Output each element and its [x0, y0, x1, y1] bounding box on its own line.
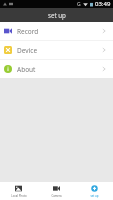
staticText: G: [77, 1, 81, 8]
staticText: Device: [17, 46, 38, 55]
staticText: set up: [48, 11, 66, 19]
button[interactable]: Local Photo: [0, 182, 37, 200]
staticText: set up: [90, 194, 99, 198]
staticText: Local Photo: [11, 194, 27, 198]
button[interactable]: Set up: [75, 182, 113, 200]
button[interactable]: About: [0, 60, 113, 78]
staticText: 03:49: [95, 0, 111, 8]
button[interactable]: Record: [0, 22, 113, 40]
button[interactable]: Device: [0, 41, 113, 59]
staticText: Record: [17, 27, 39, 36]
button[interactable]: Camera: [37, 182, 75, 200]
staticText: About: [17, 65, 36, 74]
staticText: Camera: [51, 194, 62, 198]
